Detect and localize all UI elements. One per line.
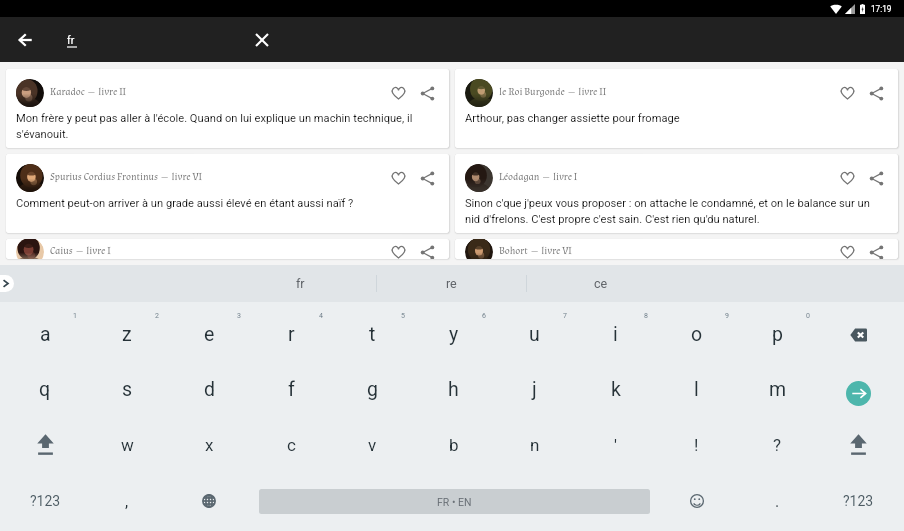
button[interactable]: Shift — [4, 417, 86, 473]
staticText: r — [288, 323, 295, 346]
staticText: Arthour, pas changer assiette pour froma… — [465, 112, 680, 125]
button[interactable]: Favorite — [385, 79, 411, 107]
staticText: x — [205, 435, 214, 455]
staticText: d — [204, 378, 215, 401]
button[interactable]: Backspace — [818, 307, 899, 362]
staticText: k — [611, 378, 621, 401]
button[interactable]: Share — [863, 79, 889, 107]
button[interactable]: Share — [863, 164, 889, 192]
button[interactable]: d — [168, 362, 250, 417]
button[interactable]: , — [86, 473, 168, 529]
staticText: 17:19 — [871, 4, 892, 14]
button[interactable]: fr — [225, 265, 376, 302]
button[interactable]: ?123 — [818, 473, 899, 529]
staticText: g — [367, 378, 378, 401]
button[interactable]: y — [413, 307, 494, 362]
staticText: q — [39, 378, 51, 401]
staticText: 4 — [319, 312, 323, 320]
staticText: Sinon c'que j'peux vous proposer : on at… — [465, 197, 887, 226]
button[interactable]: Share — [863, 239, 889, 259]
staticText: , — [125, 492, 129, 511]
button[interactable]: j — [494, 362, 575, 417]
staticText: fr — [296, 276, 305, 291]
button[interactable]: le Roi Burgonde — livre II — [455, 69, 898, 148]
button[interactable]: Share — [414, 164, 440, 192]
button[interactable]: i — [575, 307, 656, 362]
button[interactable]: q — [4, 362, 86, 417]
staticText: i — [613, 323, 618, 346]
button[interactable]: re — [376, 265, 526, 302]
staticText: e — [204, 323, 215, 346]
button[interactable]: m — [737, 362, 818, 417]
button[interactable]: Favorite — [385, 164, 411, 192]
button[interactable]: Expand suggestions — [0, 275, 14, 292]
button[interactable]: Share — [414, 79, 440, 107]
staticText: Comment peut-on arriver à un grade aussi… — [16, 197, 354, 210]
staticText: Karadoc — livre II — [50, 85, 127, 98]
staticText: j — [532, 378, 537, 401]
button[interactable]: g — [332, 362, 413, 417]
button[interactable]: Enter — [818, 362, 899, 417]
staticText: ?123 — [843, 493, 874, 509]
button[interactable]: s — [86, 362, 168, 417]
staticText: Spurius Cordius Frontinus — livre VI — [50, 170, 202, 183]
button[interactable]: v — [332, 417, 413, 473]
button[interactable]: Shift — [818, 417, 899, 473]
button[interactable]: a — [4, 307, 86, 362]
button[interactable]: u — [494, 307, 575, 362]
button[interactable]: Emoji — [656, 473, 737, 529]
button[interactable]: Clear — [250, 28, 274, 52]
button[interactable]: Favorite — [834, 79, 860, 107]
button[interactable]: Favorite — [385, 239, 411, 259]
button[interactable]: Back — [13, 28, 37, 52]
staticText: fr — [67, 34, 75, 46]
staticText: 5 — [401, 312, 405, 320]
button[interactable]: r — [250, 307, 332, 362]
staticText: ' — [614, 435, 617, 455]
staticText: n — [530, 435, 540, 455]
button[interactable]: ? — [737, 417, 818, 473]
button[interactable]: ce — [526, 265, 676, 302]
button[interactable]: z — [86, 307, 168, 362]
staticText: 6 — [482, 312, 486, 320]
button[interactable]: o — [656, 307, 737, 362]
staticText: y — [449, 323, 459, 346]
button[interactable]: t — [332, 307, 413, 362]
staticText: ! — [694, 435, 699, 455]
button[interactable]: Karadoc — livre II — [6, 69, 449, 148]
button[interactable]: FR • EN — [259, 489, 650, 514]
button[interactable]: ! — [656, 417, 737, 473]
button[interactable]: Spurius Cordius Frontinus — livre VI — [6, 154, 449, 233]
staticText: 9 — [725, 312, 729, 320]
staticText: . — [775, 492, 780, 511]
staticText: ce — [594, 276, 608, 291]
button[interactable]: h — [413, 362, 494, 417]
button[interactable]: Share — [414, 239, 440, 259]
button[interactable]: k — [575, 362, 656, 417]
button[interactable]: c — [250, 417, 332, 473]
button[interactable]: ' — [575, 417, 656, 473]
button[interactable]: n — [494, 417, 575, 473]
button[interactable]: Favorite — [834, 164, 860, 192]
staticText: le Roi Burgonde — livre II — [499, 85, 607, 98]
staticText: FR • EN — [437, 496, 472, 508]
button[interactable]: x — [168, 417, 250, 473]
button[interactable]: Change language — [168, 473, 249, 529]
button[interactable]: p — [737, 307, 818, 362]
button[interactable]: ?123 — [4, 473, 86, 529]
button[interactable]: e — [168, 307, 250, 362]
button[interactable]: b — [413, 417, 494, 473]
button[interactable]: Favorite — [834, 239, 860, 259]
staticText: z — [122, 323, 132, 346]
staticText: f — [288, 378, 295, 401]
staticText: h — [448, 378, 459, 401]
button[interactable]: f — [250, 362, 332, 417]
staticText: re — [446, 276, 457, 291]
button[interactable]: Bohort — livre VI — [455, 239, 898, 259]
button[interactable]: Léodagan — livre I — [455, 154, 898, 233]
staticText: t — [369, 323, 376, 346]
button[interactable]: Caius — livre I — [6, 239, 449, 259]
button[interactable]: l — [656, 362, 737, 417]
button[interactable]: w — [86, 417, 168, 473]
